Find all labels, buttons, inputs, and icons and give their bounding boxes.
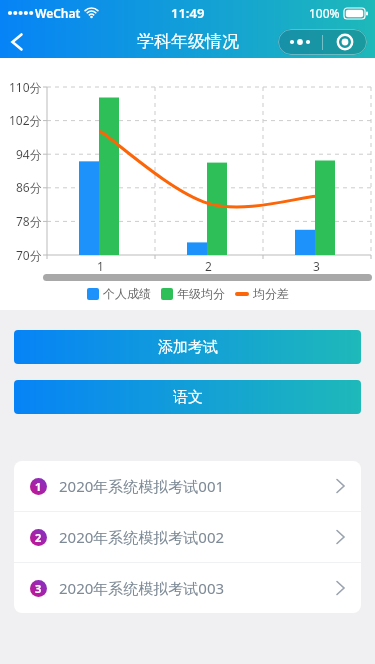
staticText: 学科年级情况	[137, 31, 239, 52]
staticText: 2020年系统模拟考试001	[59, 476, 336, 496]
staticText: 2020年系统模拟考试003	[59, 578, 336, 598]
staticText: 个人成绩	[103, 286, 151, 301]
staticText: 2020年系统模拟考试002	[59, 527, 336, 547]
button[interactable]: 3	[14, 563, 361, 613]
staticText: 1	[35, 479, 42, 494]
staticText: 语文	[173, 388, 203, 407]
staticText: 1	[97, 258, 104, 274]
button[interactable]: 语文	[14, 380, 361, 414]
button[interactable]	[323, 29, 367, 55]
button[interactable]: 1	[14, 461, 361, 511]
staticText: 94分	[16, 146, 42, 162]
button[interactable]: 2	[14, 512, 361, 562]
staticText: 78分	[16, 213, 42, 229]
staticText: 110分	[9, 79, 42, 95]
staticText: 均分差	[253, 286, 289, 301]
staticText: 102分	[9, 112, 42, 128]
button[interactable]	[0, 25, 33, 58]
staticText: 11:49	[171, 4, 205, 22]
staticText: 2	[205, 258, 212, 274]
staticText: 添加考试	[158, 338, 218, 357]
staticText: 86分	[16, 179, 42, 195]
button[interactable]	[278, 29, 322, 55]
staticText: 100%	[309, 5, 340, 21]
button[interactable]: 添加考试	[14, 330, 361, 364]
staticText: 3	[313, 258, 320, 274]
staticText: 年级均分	[177, 286, 225, 301]
staticText: 70分	[16, 247, 42, 263]
staticText: 3	[35, 581, 42, 596]
staticText: 2	[35, 530, 42, 545]
staticText: WeChat	[35, 5, 81, 21]
